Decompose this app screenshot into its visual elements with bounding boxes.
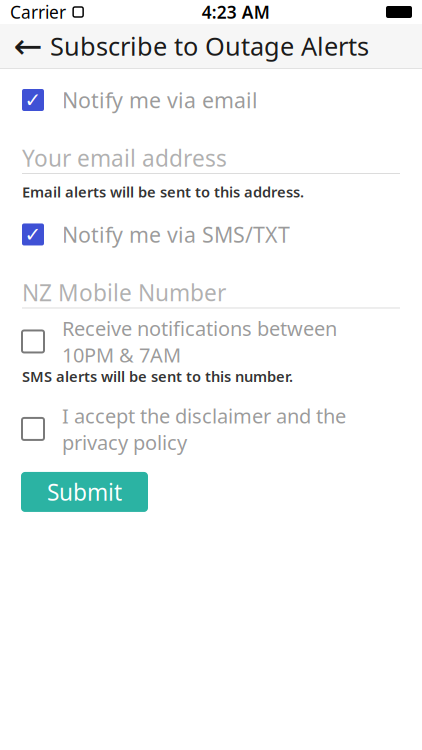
button[interactable]: ✓ <box>0 217 422 251</box>
staticText: 4:23 AM <box>202 0 270 23</box>
staticText: Submit <box>47 477 122 507</box>
staticText: I accept the disclaimer and the privacy … <box>62 402 346 455</box>
staticText <box>66 0 71 23</box>
staticText: SMS alerts will be sent to this number. <box>22 366 293 386</box>
button[interactable]: I accept the disclaimer and the privacy … <box>0 412 422 446</box>
staticText: ✓ <box>24 89 41 111</box>
staticText: NZ Mobile Number <box>22 277 226 307</box>
staticText: Subscribe to Outage Alerts <box>50 29 369 63</box>
staticText: Receive notifications between 10PM & 7AM <box>62 315 337 368</box>
button[interactable]: Submit <box>21 472 148 512</box>
staticText: Your email address <box>22 143 227 173</box>
button[interactable]: ✓ <box>0 83 422 117</box>
staticText: Notify me via SMS/TXT <box>62 220 290 249</box>
button[interactable]: Receive notifications between 10PM & 7AM <box>0 324 422 358</box>
staticText: ← <box>13 26 42 66</box>
staticText: Notify me via email <box>62 86 258 114</box>
staticText: Carrier <box>10 0 66 23</box>
staticText: Email alerts will be sent to this addres… <box>22 182 304 201</box>
staticText: ✓ <box>24 223 41 246</box>
button[interactable]: Back <box>6 24 50 68</box>
